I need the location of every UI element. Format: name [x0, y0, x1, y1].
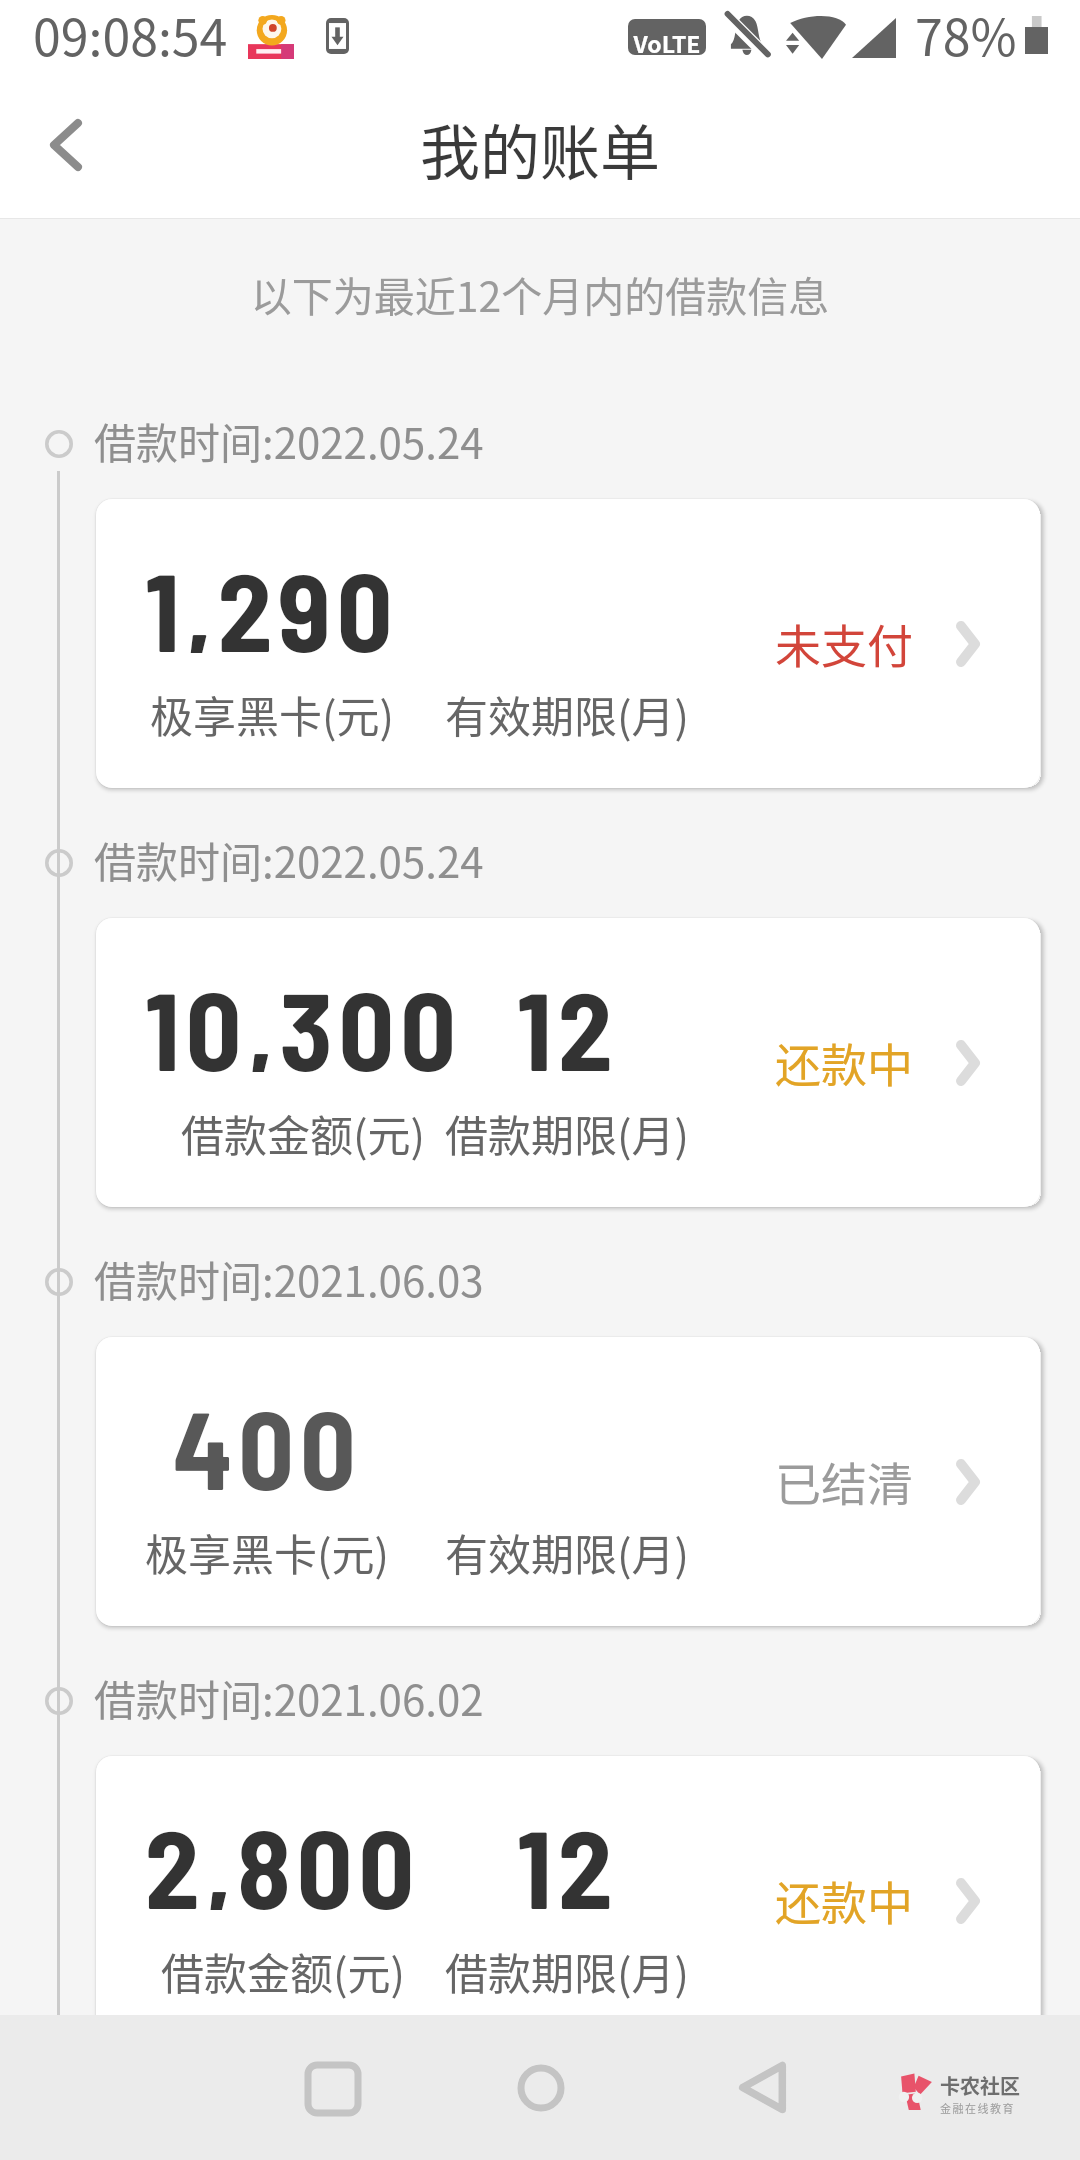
staticText: 400: [173, 1381, 362, 1491]
button[interactable]: 400: [96, 1337, 1040, 1626]
staticText: 12: [517, 962, 619, 1072]
staticText: 2,800: [145, 1800, 421, 1910]
staticText: 以下为最近12个月内的借款信息: [0, 264, 1080, 323]
button[interactable]: Recents: [270, 2015, 394, 2160]
staticText: 卡农社区: [940, 2071, 1020, 2100]
staticText: 借款金额(元): [181, 1102, 426, 1164]
staticText: 78%: [915, 0, 1017, 70]
button[interactable]: 2,800: [96, 1756, 1040, 2045]
staticText: 极享黑卡(元): [145, 1521, 390, 1583]
staticText: 金融在线教育: [940, 2100, 1015, 2116]
button[interactable]: Back: [700, 2015, 824, 2160]
button[interactable]: 1,290: [96, 499, 1040, 788]
staticText: 借款金额(元): [161, 1940, 406, 2002]
staticText: 借款时间:2021.06.03: [94, 1248, 484, 1309]
staticText: 10,300: [145, 962, 462, 1072]
staticText: 未支付: [775, 610, 913, 677]
button[interactable]: 10,300: [96, 918, 1040, 1207]
staticText: 有效期限(月): [445, 1521, 690, 1583]
button[interactable]: Back: [0, 88, 124, 219]
staticText: VoLTE: [632, 26, 702, 59]
staticText: 借款时间:2022.05.24: [94, 410, 484, 471]
staticText: 还款中: [775, 1029, 913, 1096]
staticText: 极享黑卡(元): [150, 683, 395, 745]
button[interactable]: Home: [477, 2015, 601, 2160]
staticText: 已结清: [775, 1448, 913, 1515]
staticText: 我的账单: [420, 105, 660, 192]
staticText: 借款时间:2021.06.02: [94, 1667, 484, 1728]
staticText: 借款时间:2022.05.24: [94, 829, 484, 890]
staticText: 09:08:54: [33, 0, 228, 70]
staticText: 借款期限(月): [445, 1940, 690, 2002]
staticText: 借款期限(月): [445, 1102, 690, 1164]
staticText: 1,290: [145, 543, 399, 653]
staticText: 还款中: [775, 1867, 913, 1934]
staticText: 有效期限(月): [445, 683, 690, 745]
staticText: 12: [517, 1800, 619, 1910]
